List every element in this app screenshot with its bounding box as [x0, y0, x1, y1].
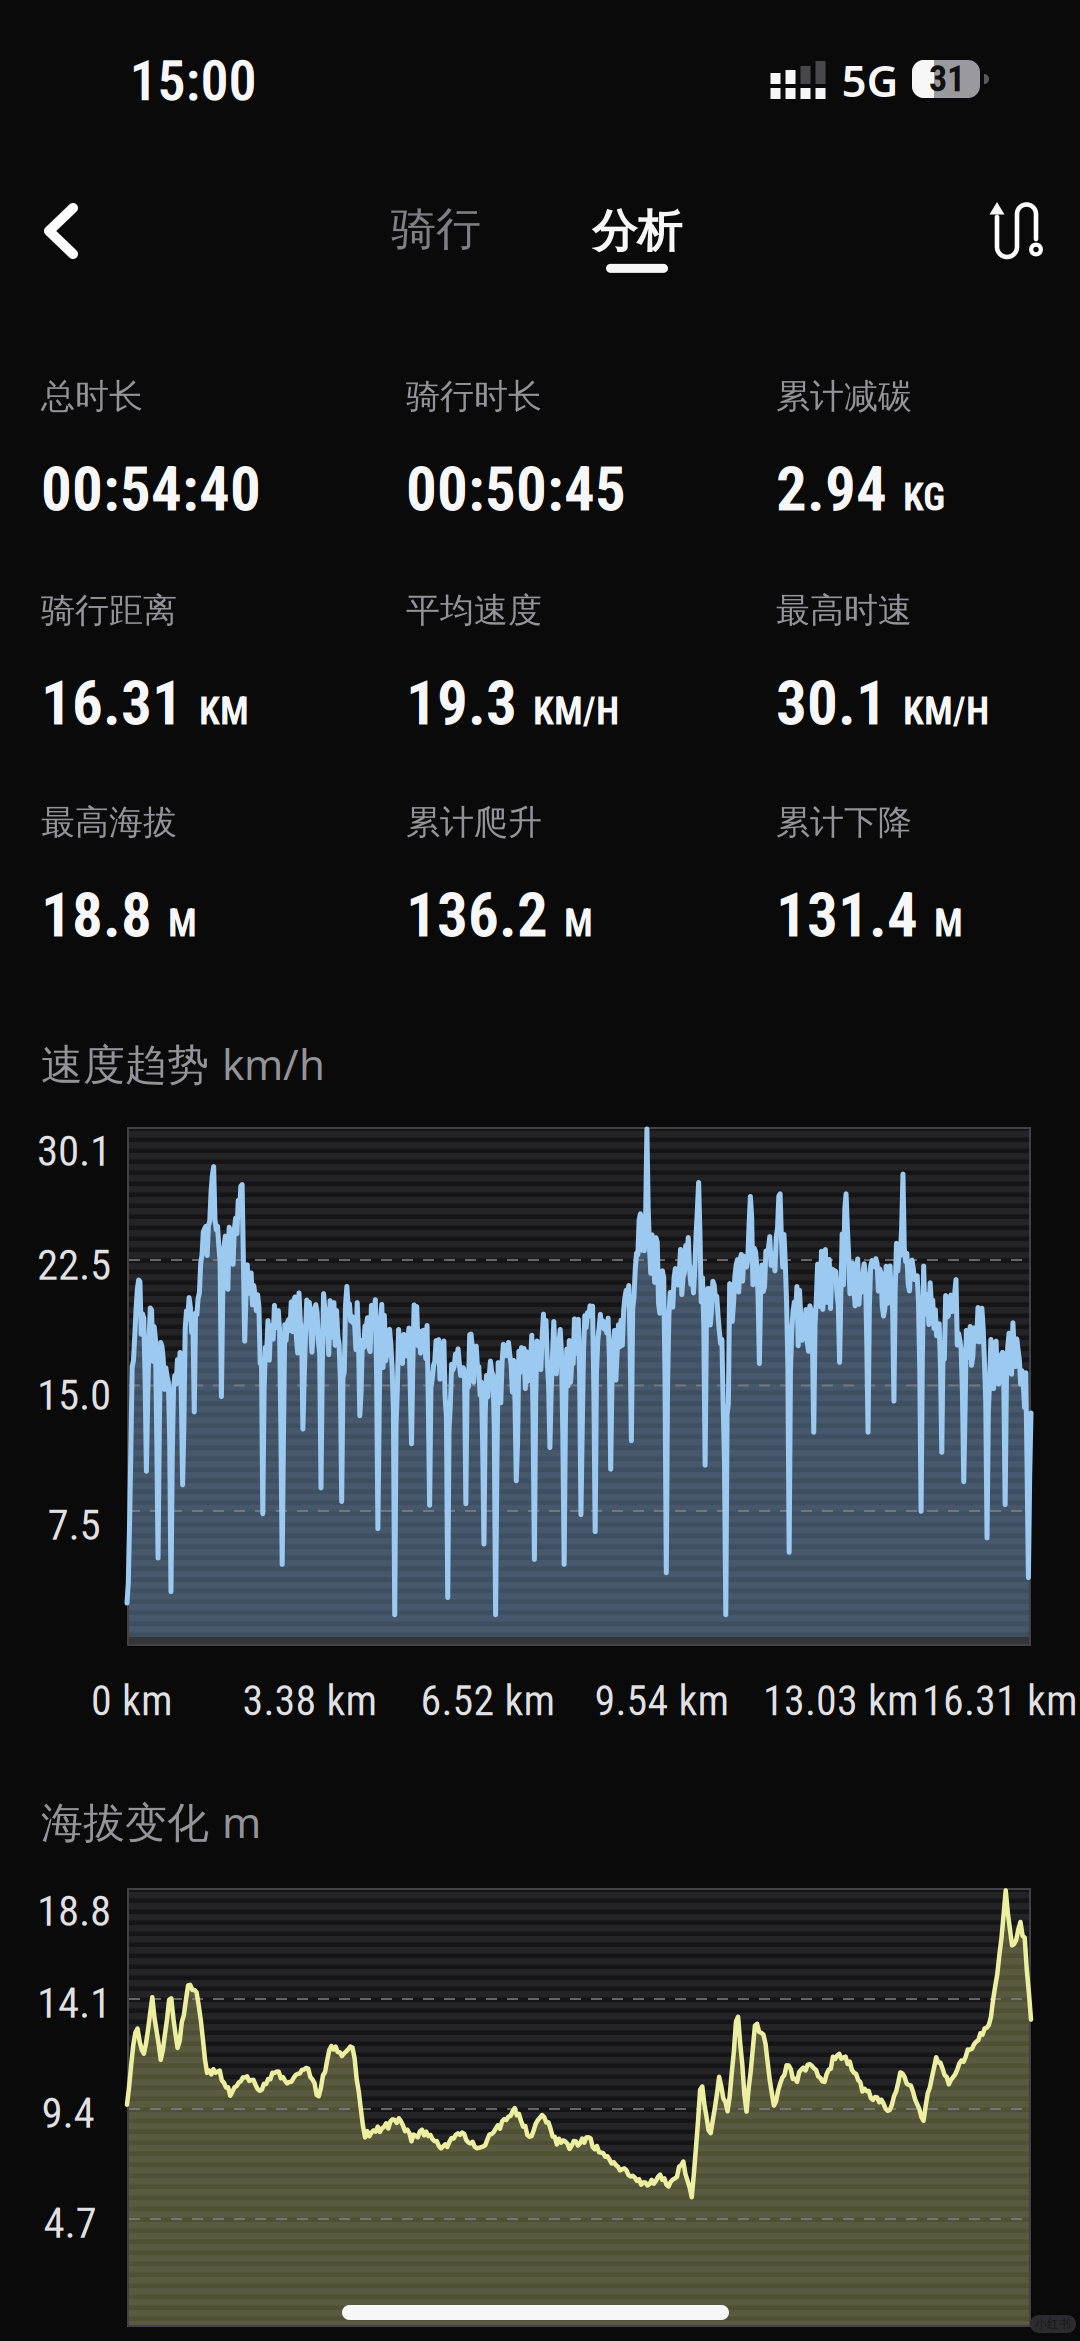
staticText: 7.5 [47, 1500, 100, 1550]
staticText: 16.31 [41, 668, 183, 739]
staticText: 累计下降 [776, 801, 912, 844]
staticText: 30.1 [37, 1126, 111, 1176]
staticText: 136.2 [406, 880, 548, 951]
staticText: 5G [841, 50, 898, 110]
staticText: 18.8 [37, 1886, 111, 1936]
staticText: M [564, 901, 593, 946]
staticText: 19.3 [406, 668, 517, 739]
staticText: 9.54 km [594, 1676, 729, 1726]
staticText: KM/H [533, 689, 619, 734]
staticText: 131.4 [776, 880, 918, 951]
staticText: 16.31 km [922, 1676, 1078, 1726]
staticText: KM/H [903, 689, 989, 734]
staticText: KM [199, 689, 249, 734]
staticText: 22.5 [37, 1240, 111, 1290]
button[interactable]: Back [33, 200, 95, 262]
staticText: KG [903, 475, 945, 520]
button[interactable]: 分析 [592, 203, 682, 273]
staticText: 累计减碳 [776, 375, 912, 418]
staticText: 小红书 [1035, 2316, 1071, 2331]
staticText: 4.7 [43, 2198, 96, 2248]
staticText: 00:54:40 [41, 454, 261, 525]
staticText: 累计爬升 [406, 801, 542, 844]
staticText: 6.52 km [420, 1676, 555, 1726]
staticText: M [168, 901, 197, 946]
staticText: 分析 [592, 203, 682, 260]
staticText: 18.8 [41, 880, 152, 951]
staticText: 14.1 [37, 1978, 111, 2028]
staticText: 00:50:45 [406, 454, 626, 525]
staticText: 15:00 [129, 48, 256, 114]
staticText: 总时长 [41, 375, 143, 418]
staticText: 30.1 [776, 668, 887, 739]
staticText: 31 [929, 58, 965, 100]
staticText: 速度趋势 km/h [41, 1035, 325, 1092]
staticText: 最高时速 [776, 589, 912, 632]
staticText: 海拔变化 m [41, 1793, 261, 1850]
staticText: 0 km [91, 1676, 173, 1726]
staticText: M [934, 901, 963, 946]
staticText: 3.38 km [242, 1676, 377, 1726]
staticText: 骑行距离 [41, 589, 177, 632]
staticText: 骑行 [391, 201, 481, 257]
staticText: 2.94 [776, 454, 887, 525]
staticText: 骑行时长 [406, 375, 542, 418]
staticText: 最高海拔 [41, 801, 177, 844]
staticText: 平均速度 [406, 589, 542, 632]
staticText: 13.03 km [763, 1676, 919, 1726]
staticText: 15.0 [37, 1370, 111, 1420]
button[interactable]: Route [961, 181, 1061, 281]
button[interactable]: 骑行 [391, 201, 481, 257]
staticText: 9.4 [41, 2088, 94, 2138]
